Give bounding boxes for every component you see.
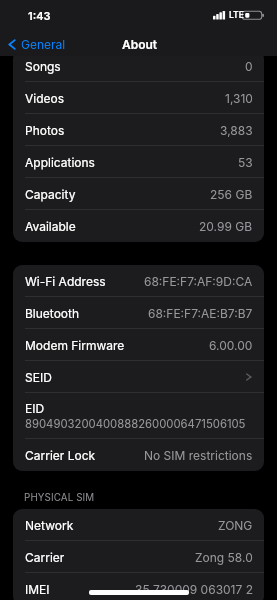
staticText: Network xyxy=(25,518,74,533)
staticText: SEID xyxy=(25,370,52,385)
staticText: 68:FE:F7:AF:9D:CA xyxy=(144,274,253,289)
staticText: 89049032004008882600006471506105 xyxy=(25,417,246,431)
button[interactable]: Bluetooth xyxy=(13,297,264,329)
staticText: Modem Firmware xyxy=(25,338,125,353)
staticText: 0 xyxy=(245,59,253,74)
staticText: Songs xyxy=(25,59,61,74)
button[interactable]: Photos xyxy=(13,114,264,146)
button[interactable]: EID xyxy=(13,393,264,439)
staticText: EID xyxy=(25,401,45,416)
staticText: Wi-Fi Address xyxy=(25,274,106,289)
staticText: IMEI xyxy=(25,582,50,597)
button[interactable]: Carrier Lock xyxy=(13,439,264,471)
staticText: 53 xyxy=(238,155,253,170)
button[interactable]: Carrier xyxy=(13,541,264,573)
staticText: Bluetooth xyxy=(25,306,80,321)
button[interactable]: Capacity xyxy=(13,178,264,210)
staticText: Carrier Lock xyxy=(25,448,96,463)
staticText: Photos xyxy=(25,123,65,138)
staticText: 20.99 GB xyxy=(199,219,253,234)
other: Open SEID xyxy=(245,372,253,382)
staticText: LTE xyxy=(229,10,244,20)
staticText: Available xyxy=(25,219,76,234)
staticText: General xyxy=(21,37,66,52)
staticText: Videos xyxy=(25,91,65,106)
button[interactable]: Applications xyxy=(13,146,264,178)
staticText: 3,883 xyxy=(220,123,253,138)
button[interactable]: Available xyxy=(13,210,264,242)
staticText: Capacity xyxy=(25,187,76,202)
button[interactable]: Modem Firmware xyxy=(13,329,264,361)
staticText: 6.00.00 xyxy=(209,338,253,353)
staticText: About xyxy=(122,37,158,52)
button[interactable]: SEID xyxy=(13,361,264,393)
staticText: PHYSICAL SIM xyxy=(24,492,95,504)
button[interactable]: IMEI xyxy=(13,573,264,600)
staticText: ZONG xyxy=(218,518,253,533)
staticText: 1,310 xyxy=(225,91,253,106)
button[interactable]: Network xyxy=(13,509,264,541)
staticText: Zong 58.0 xyxy=(195,550,253,565)
button[interactable]: General xyxy=(8,37,66,52)
button[interactable]: Videos xyxy=(13,82,264,114)
button[interactable]: Wi-Fi Address xyxy=(13,265,264,297)
staticText: Applications xyxy=(25,155,95,170)
staticText: 35 730009 063017 2 xyxy=(135,582,253,597)
staticText: 68:FE:F7:AE:B7:B7 xyxy=(148,306,253,321)
staticText: 256 GB xyxy=(210,187,253,202)
staticText: Carrier xyxy=(25,550,65,565)
staticText: 1:43 xyxy=(28,9,51,22)
staticText: No SIM restrictions xyxy=(144,448,253,463)
button[interactable]: Songs xyxy=(13,50,264,82)
